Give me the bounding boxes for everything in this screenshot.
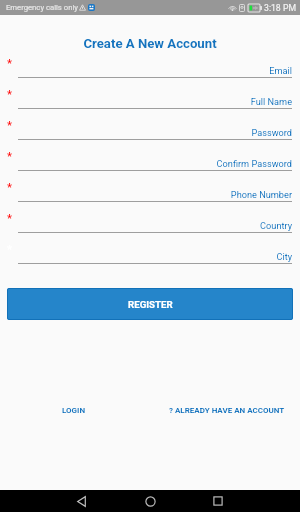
staticText: * [7, 212, 12, 225]
staticText: Phone Number [18, 189, 292, 200]
button[interactable]: * [0, 206, 300, 237]
button[interactable]: LOGIN [60, 404, 88, 417]
staticText: Emergency calls only [6, 3, 78, 12]
staticText: Email [18, 65, 292, 76]
button[interactable]: * [0, 51, 300, 82]
staticText: Password [18, 127, 292, 138]
staticText: Create A New Account [0, 36, 300, 51]
staticText: REGISTER [128, 299, 173, 310]
staticText: * [7, 88, 12, 101]
staticText: * [7, 181, 12, 194]
button[interactable]: * [0, 237, 300, 268]
button[interactable]: * [0, 144, 300, 175]
staticText: * [7, 119, 12, 132]
staticText: City [18, 251, 292, 262]
button[interactable]: * [0, 82, 300, 113]
staticText: Country [18, 220, 292, 231]
button[interactable]: Recent apps [201, 490, 235, 512]
button[interactable]: Back [64, 490, 98, 512]
staticText: Confirm Password [18, 158, 292, 169]
button[interactable]: ? ALREADY HAVE AN ACCOUNT [167, 404, 287, 417]
staticText: * [7, 150, 12, 163]
button[interactable]: REGISTER [7, 288, 293, 320]
staticText: ? ALREADY HAVE AN ACCOUNT [169, 406, 285, 415]
staticText: LOGIN [62, 406, 86, 415]
button[interactable]: * [0, 175, 300, 206]
staticText: Full Name [18, 96, 292, 107]
button[interactable]: Home [133, 490, 167, 512]
staticText: 3:18 PM [264, 3, 296, 13]
button[interactable]: * [0, 113, 300, 144]
staticText: * [7, 57, 12, 70]
